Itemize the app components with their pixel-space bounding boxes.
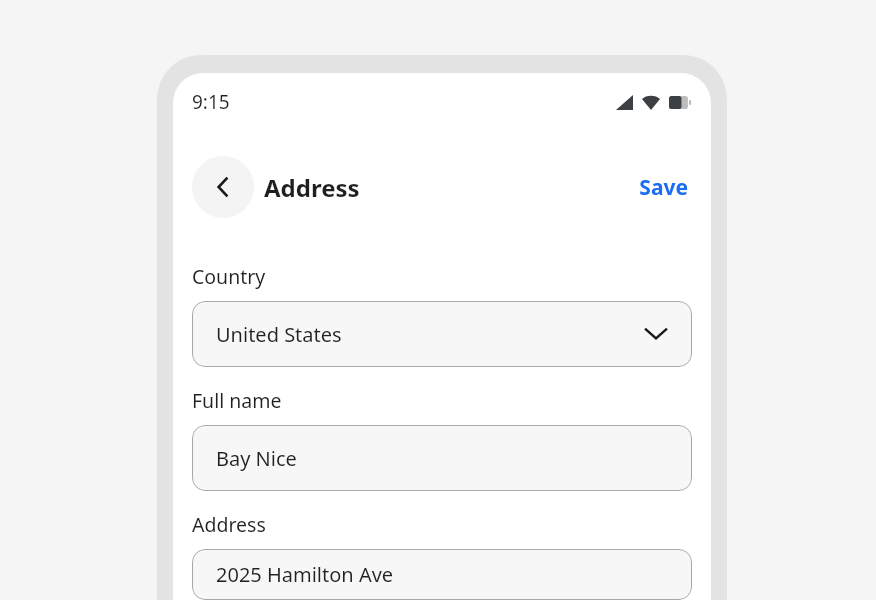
staticText: Country	[192, 263, 266, 290]
button[interactable]: 2025 Hamilton Ave	[192, 549, 692, 600]
staticText: Save	[639, 173, 688, 202]
button[interactable]: Bay Nice	[192, 425, 692, 491]
staticText: 9:15	[192, 89, 230, 115]
staticText: Address	[192, 511, 266, 538]
staticText: United States	[216, 321, 342, 348]
button[interactable]: Back	[192, 156, 254, 218]
button[interactable]: Save	[635, 169, 692, 206]
staticText: 2025 Hamilton Ave	[216, 561, 394, 588]
staticText: Bay Nice	[216, 445, 297, 472]
button[interactable]: United States	[192, 301, 692, 367]
staticText: Address	[264, 171, 360, 204]
staticText: Full name	[192, 387, 282, 414]
